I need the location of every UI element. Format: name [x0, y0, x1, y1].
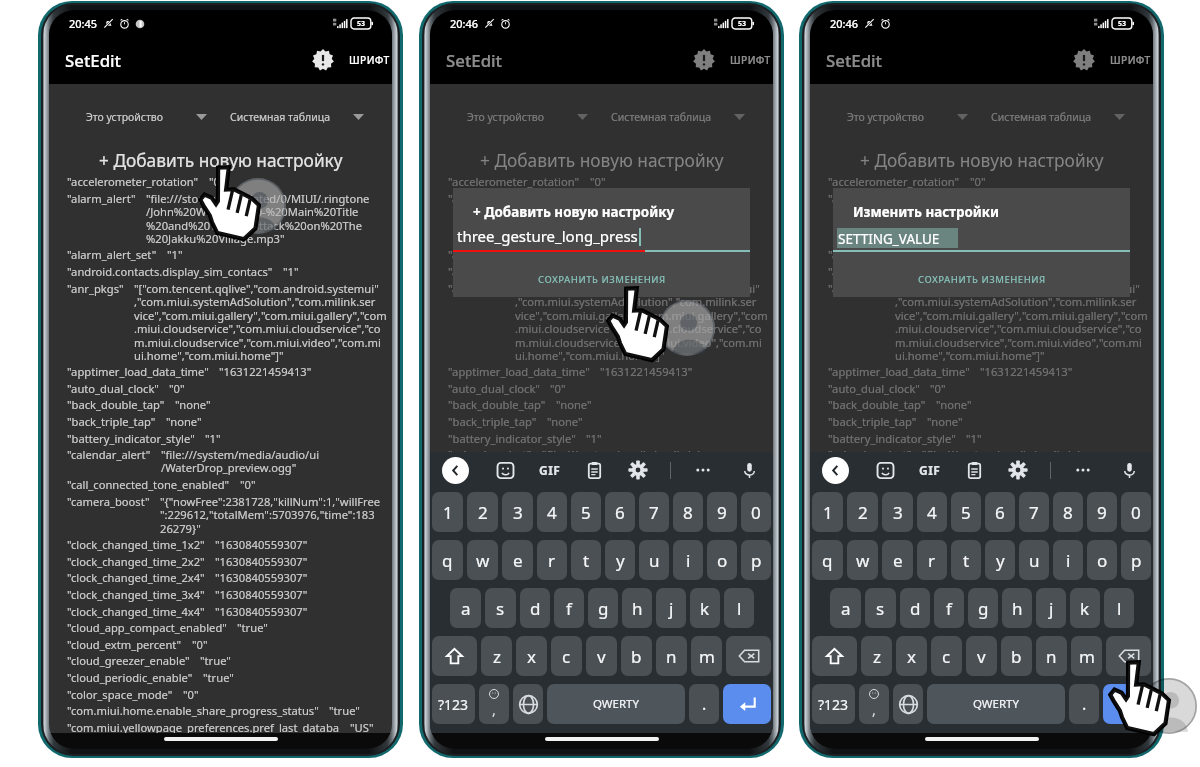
button[interactable]: More options — [693, 460, 713, 480]
button[interactable]: r — [537, 540, 567, 580]
button[interactable]: СОХРАНИТЬ ИЗМЕНЕНИЯ — [453, 270, 750, 289]
button[interactable]: More options — [1073, 460, 1093, 480]
button[interactable]: h — [622, 588, 652, 628]
button[interactable]: ?123 — [432, 684, 475, 724]
button[interactable]: Clipboard — [585, 461, 604, 480]
button[interactable]: c — [551, 636, 582, 676]
button[interactable]: g — [588, 588, 618, 628]
button[interactable]: h — [1002, 588, 1032, 628]
button[interactable]: a — [450, 588, 481, 628]
button[interactable]: QWERTY — [927, 684, 1065, 724]
button[interactable]: y — [605, 540, 635, 580]
button[interactable]: 4 — [917, 492, 947, 532]
button[interactable]: Shift — [432, 636, 477, 676]
button[interactable]: c — [931, 636, 962, 676]
button[interactable]: b — [1001, 636, 1032, 676]
button[interactable]: Shift — [812, 636, 857, 676]
button[interactable]: 8 — [1053, 492, 1083, 532]
button[interactable]: Voice input — [740, 461, 759, 480]
button[interactable]: 0 — [741, 492, 771, 532]
button[interactable]: 5 — [571, 492, 601, 532]
button[interactable]: u — [1019, 540, 1049, 580]
button[interactable]: 7 — [639, 492, 669, 532]
button[interactable]: f — [934, 588, 964, 628]
button[interactable]: u — [639, 540, 669, 580]
button[interactable]: 2 — [847, 492, 878, 532]
button[interactable]: i — [1053, 540, 1083, 580]
button[interactable]: Voice input — [1120, 461, 1139, 480]
button[interactable]: Enter — [723, 684, 771, 724]
button[interactable]: t — [571, 540, 601, 580]
button[interactable]: o — [707, 540, 737, 580]
button[interactable]: j — [1036, 588, 1066, 628]
button[interactable]: 0 — [1121, 492, 1151, 532]
button[interactable]: r — [917, 540, 947, 580]
button[interactable]: q — [432, 540, 463, 580]
button[interactable]: . — [689, 684, 719, 724]
button[interactable]: Это устройство — [430, 96, 601, 138]
button[interactable]: Info — [1069, 45, 1099, 75]
button[interactable]: Emoji and comma — [859, 684, 889, 724]
button[interactable]: 5 — [951, 492, 981, 532]
button[interactable]: Change language — [893, 684, 923, 724]
button[interactable]: x — [516, 636, 547, 676]
button[interactable]: Системная таблица — [601, 96, 773, 138]
button[interactable]: Info — [689, 45, 719, 75]
button[interactable]: Back — [822, 457, 849, 484]
button[interactable]: q — [812, 540, 843, 580]
button[interactable]: ?123 — [812, 684, 855, 724]
button[interactable]: i — [673, 540, 703, 580]
button[interactable]: j — [656, 588, 686, 628]
button[interactable]: Это устройство — [810, 96, 981, 138]
button[interactable]: a — [830, 588, 861, 628]
button[interactable]: m — [1071, 636, 1102, 676]
button[interactable]: 8 — [673, 492, 703, 532]
button[interactable]: s — [865, 588, 896, 628]
button[interactable]: 9 — [1087, 492, 1117, 532]
button[interactable]: e — [882, 540, 913, 580]
button[interactable]: l — [724, 588, 754, 628]
button[interactable]: x — [896, 636, 927, 676]
button[interactable]: w — [467, 540, 498, 580]
button[interactable]: e — [502, 540, 533, 580]
button[interactable]: 1 — [432, 492, 463, 532]
button[interactable]: f — [554, 588, 584, 628]
button[interactable]: QWERTY — [547, 684, 685, 724]
button[interactable]: 3 — [502, 492, 533, 532]
button[interactable]: Это устройство — [49, 96, 220, 138]
button[interactable]: Enter — [1103, 684, 1151, 724]
button[interactable]: 2 — [467, 492, 498, 532]
button[interactable]: 3 — [882, 492, 913, 532]
button[interactable]: o — [1087, 540, 1117, 580]
button[interactable]: Stickers — [496, 461, 515, 480]
button[interactable]: ШРИФТ — [725, 45, 773, 75]
button[interactable]: k — [690, 588, 720, 628]
button[interactable]: Settings — [628, 460, 648, 480]
button[interactable]: Emoji and comma — [479, 684, 509, 724]
button[interactable]: y — [985, 540, 1015, 580]
button[interactable]: Settings — [1008, 460, 1028, 480]
button[interactable]: . — [1069, 684, 1099, 724]
button[interactable]: p — [741, 540, 771, 580]
button[interactable]: l — [1104, 588, 1134, 628]
button[interactable]: Системная таблица — [220, 96, 392, 138]
button[interactable]: Info — [308, 45, 338, 75]
button[interactable]: 1 — [812, 492, 843, 532]
button[interactable]: Backspace — [1106, 636, 1151, 676]
button[interactable]: z — [861, 636, 892, 676]
button[interactable]: p — [1121, 540, 1151, 580]
button[interactable]: v — [586, 636, 617, 676]
button[interactable]: Stickers — [876, 461, 895, 480]
button[interactable]: 4 — [537, 492, 567, 532]
button[interactable]: Backspace — [726, 636, 771, 676]
button[interactable]: d — [520, 588, 550, 628]
button[interactable]: 7 — [1019, 492, 1049, 532]
button[interactable]: w — [847, 540, 878, 580]
button[interactable]: s — [485, 588, 516, 628]
button[interactable]: m — [691, 636, 722, 676]
button[interactable]: Back — [442, 457, 469, 484]
button[interactable]: k — [1070, 588, 1100, 628]
button[interactable]: d — [900, 588, 930, 628]
button[interactable]: Системная таблица — [981, 96, 1153, 138]
button[interactable]: g — [968, 588, 998, 628]
